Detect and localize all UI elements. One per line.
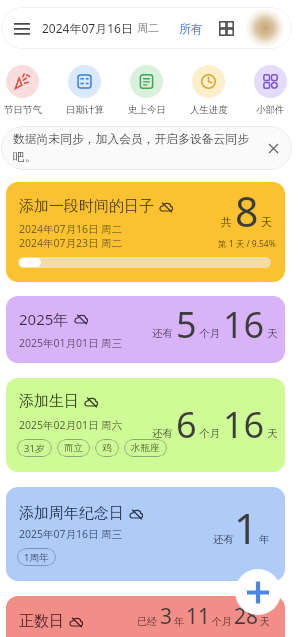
staticText: 16 [223,400,265,449]
staticText: 2025年02月01日 周六 [19,418,123,432]
staticText: 6 [176,400,197,449]
staticText: 小部件 [256,104,285,116]
button[interactable]: 小部件 [248,65,293,116]
staticText: 年 [259,533,270,546]
button[interactable]: 节日节气 [0,65,45,116]
staticText: 数据尚未同步，加入会员，开启多设备云同步吧。 [13,132,251,164]
staticText: 个月 [212,615,232,628]
staticText: 2024年07月16日 周二 [19,222,123,236]
staticText: 天 [261,215,272,229]
staticText: 2025年01月01日 周三 [19,336,123,350]
staticText: 16 [223,300,265,349]
staticText: 31岁 [24,442,45,455]
staticText: 2025年07月16日 周三 [19,527,123,541]
staticText: 1周年 [24,551,49,564]
staticText: 2024年07月16日 [42,20,137,36]
button[interactable]: Menu [9,15,35,41]
staticText: 日期计算 [66,104,104,116]
staticText: 史上今日 [128,104,166,116]
button[interactable]: Close [262,137,284,159]
staticText: 所有 [179,21,203,36]
button[interactable]: 史上今日 [124,65,169,116]
staticText: 周二 [137,21,159,35]
button[interactable]: 2025年 [6,296,285,363]
staticText: 共 [221,215,232,229]
staticText: 2025年 [19,309,69,329]
staticText: 个月 [199,327,220,340]
staticText: 节日节气 [4,104,42,116]
staticText: 已经 [137,615,157,628]
staticText: 正数日 [19,612,64,631]
staticText: 人生进度 [190,104,228,116]
button[interactable]: 日期计算 [62,65,107,116]
staticText: 11 [186,602,211,631]
button[interactable]: 正数日 [6,596,285,637]
staticText: 28 [234,602,259,631]
button[interactable]: Add [235,569,281,615]
staticText: 天 [267,327,278,340]
button[interactable]: Grid view [214,16,238,40]
staticText: 天 [260,615,270,628]
staticText: 水瓶座 [131,442,160,454]
staticText: 2024年07月23日 周二 [19,236,123,250]
staticText: 还有 [213,533,234,546]
button[interactable]: 添加生日 [6,378,285,472]
staticText: 5 [176,300,197,349]
button[interactable]: 添加一段时间的日子 [6,182,285,282]
staticText: 添加一段时间的日子 [19,197,154,216]
button[interactable]: 数据尚未同步，加入会员，开启多设备云同步吧。 [1,126,292,170]
staticText: 添加周年纪念日 [19,504,124,523]
button[interactable]: 添加周年纪念日 [6,487,285,581]
staticText: 年 [174,615,184,628]
staticText: 鸡 [102,442,112,454]
staticText: 1 [234,499,259,556]
staticText: 3 [160,602,173,631]
staticText: 天 [267,427,278,440]
button[interactable]: 人生进度 [186,65,231,116]
button[interactable]: 所有 [176,21,206,36]
staticText: 而立 [64,442,83,454]
button[interactable]: Profile [246,9,284,47]
staticText: 添加生日 [19,392,79,411]
staticText: 8 [235,183,259,239]
staticText: 还有 [152,427,173,440]
staticText: 还有 [152,327,173,340]
staticText: 第 1 天 / 9.54% [218,238,276,250]
staticText: 个月 [199,427,220,440]
